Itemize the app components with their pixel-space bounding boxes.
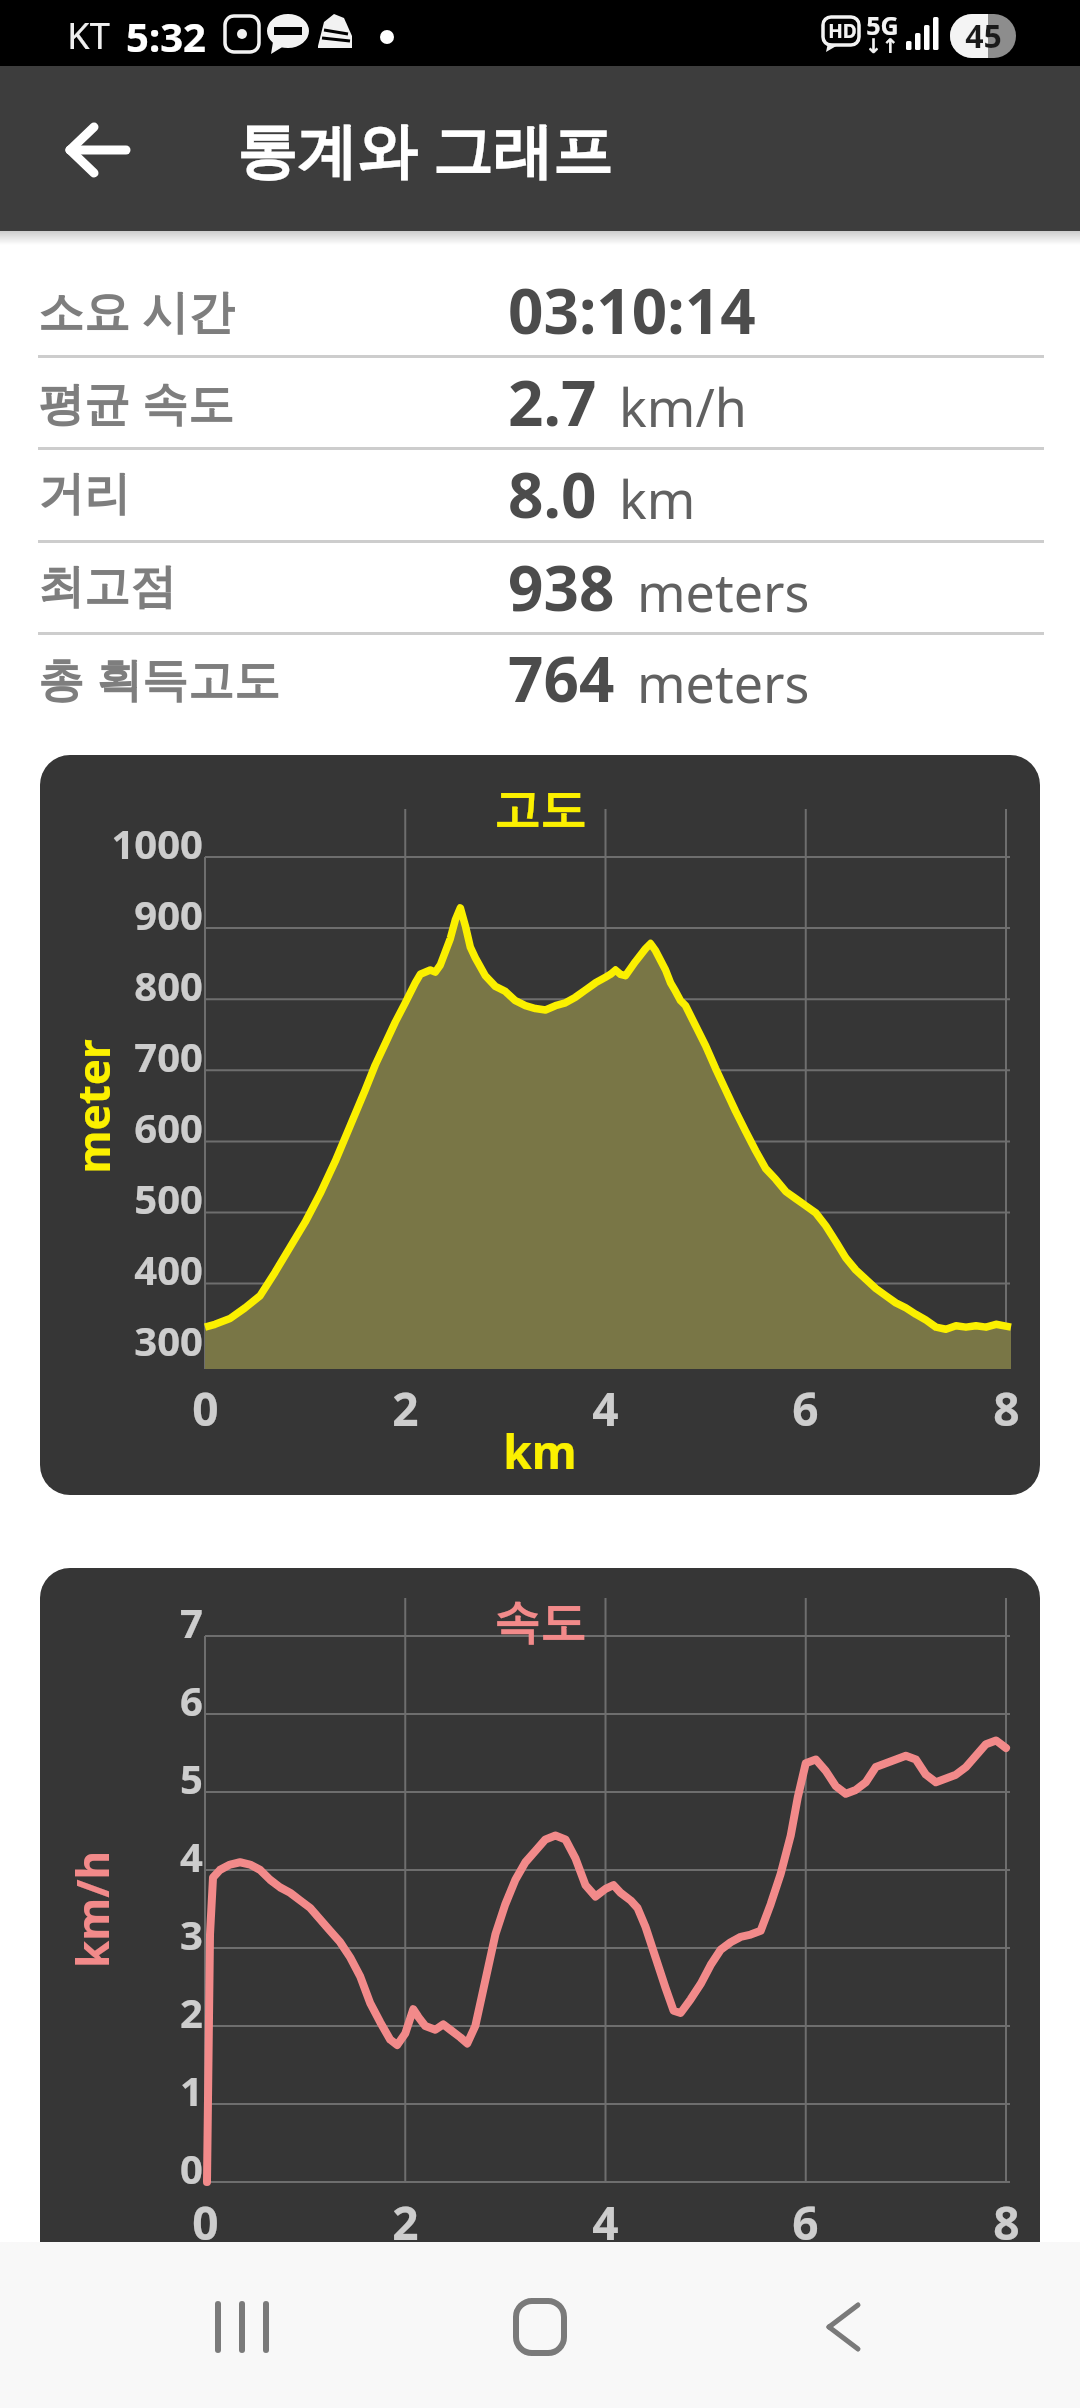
staticText: 4 (592, 1377, 619, 1433)
staticText: 764 (508, 636, 615, 720)
staticText: 6 (180, 1673, 203, 1727)
staticText: 0 (180, 2141, 203, 2195)
staticText: 45 (965, 14, 1002, 58)
staticText: 최고점 (38, 558, 176, 616)
staticText: 500 (134, 1171, 203, 1225)
staticText: 03:10:14 (508, 268, 756, 352)
staticText: meters (637, 647, 810, 718)
staticText: 거리 (38, 465, 130, 523)
staticText: 6 (792, 2191, 819, 2242)
staticText: 8 (993, 1377, 1020, 1433)
staticText: 7 (180, 1595, 203, 1649)
staticText: 300 (134, 1313, 203, 1367)
staticText: 2 (392, 1377, 419, 1433)
staticText: HD (828, 18, 857, 44)
staticText: 4 (592, 2191, 619, 2242)
staticText: meter (62, 1038, 122, 1173)
staticText: 2.7 (508, 360, 597, 444)
staticText: km/h (62, 1850, 122, 1968)
staticText: 600 (134, 1100, 203, 1154)
staticText: 800 (134, 958, 203, 1012)
staticText: 6 (792, 1377, 819, 1433)
staticText: KT (67, 11, 110, 55)
staticText: 평균 속도 (38, 371, 234, 434)
staticText: 400 (134, 1242, 203, 1296)
staticText: 고도 (494, 781, 586, 836)
staticText: meters (637, 556, 810, 627)
staticText: 5 (180, 1751, 203, 1805)
staticText: 총 획득고도 (38, 647, 280, 710)
button[interactable] (176, 2261, 308, 2393)
staticText: 938 (508, 545, 615, 629)
button[interactable] (48, 100, 148, 200)
staticText: 2 (180, 1985, 203, 2039)
staticText: 700 (134, 1029, 203, 1083)
staticText: 8.0 (508, 452, 597, 536)
staticText: 통계와 그래프 (237, 108, 613, 190)
staticText: km (619, 463, 696, 534)
staticText: 5G (866, 8, 899, 36)
button[interactable] (778, 2261, 910, 2393)
staticText: 소요 시간 (38, 279, 234, 342)
button[interactable] (474, 2261, 606, 2393)
staticText: 8 (993, 2191, 1020, 2242)
staticText: 1000 (111, 816, 203, 870)
staticText: 5:32 (126, 9, 206, 57)
staticText: ↓↑ (865, 34, 899, 57)
staticText: 900 (134, 887, 203, 941)
staticText: 3 (180, 1907, 203, 1961)
staticText: 0 (192, 2191, 219, 2242)
staticText: 속도 (494, 1594, 586, 1649)
staticText: 0 (192, 1377, 219, 1433)
staticText: km (503, 1420, 577, 1476)
staticText: 1 (180, 2063, 203, 2117)
staticText: 2 (392, 2191, 419, 2242)
staticText: km/h (619, 371, 747, 442)
staticText: 4 (180, 1829, 203, 1883)
